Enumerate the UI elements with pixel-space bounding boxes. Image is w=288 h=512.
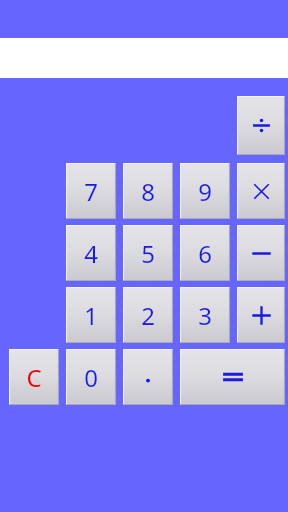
staticText: 3 (198, 299, 212, 332)
button[interactable]: 8 (123, 163, 173, 219)
button[interactable]: Multiply (237, 163, 285, 219)
button[interactable]: C (9, 349, 59, 405)
button[interactable]: Equals (180, 349, 285, 405)
staticText: 2 (141, 299, 155, 332)
button[interactable]: 7 (66, 163, 116, 219)
staticText: 1 (84, 299, 98, 332)
button[interactable]: 6 (180, 225, 230, 281)
button[interactable]: 2 (123, 287, 173, 343)
button[interactable]: 9 (180, 163, 230, 219)
staticText: 9 (198, 175, 212, 208)
button[interactable]: Plus (237, 287, 285, 343)
staticText: 6 (198, 237, 212, 270)
staticText: 8 (141, 175, 155, 208)
button[interactable]: 0 (66, 349, 116, 405)
staticText: 0 (84, 361, 98, 394)
button[interactable]: 3 (180, 287, 230, 343)
button[interactable]: 4 (66, 225, 116, 281)
staticText: 7 (84, 175, 98, 208)
button[interactable]: 1 (66, 287, 116, 343)
button[interactable]: Minus (237, 225, 285, 281)
button[interactable]: Divide (237, 96, 285, 155)
button[interactable]: 5 (123, 225, 173, 281)
button[interactable]: Decimal point (123, 349, 173, 405)
staticText: C (26, 361, 42, 394)
staticText: 5 (141, 237, 155, 270)
staticText: 4 (84, 237, 98, 270)
